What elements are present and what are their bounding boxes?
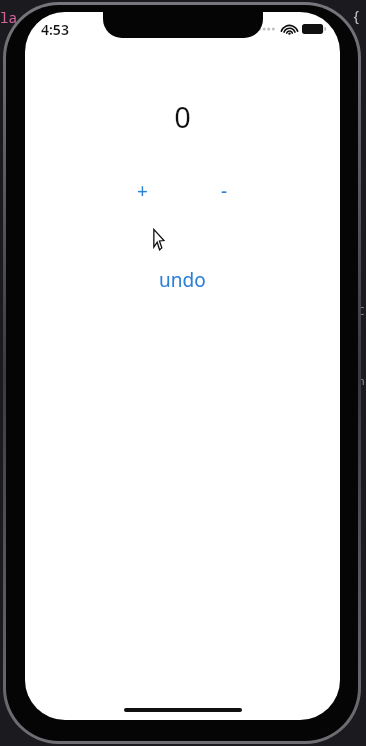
staticText: n: [358, 373, 365, 388]
button[interactable]: undo: [145, 261, 220, 299]
staticText: 0: [174, 97, 191, 136]
staticText: undo: [159, 267, 206, 293]
staticText: +: [137, 178, 148, 204]
staticText: -: [221, 178, 228, 204]
staticText: {: [352, 6, 361, 25]
staticText: la: [0, 8, 17, 27]
staticText: 4:53: [41, 20, 69, 39]
button[interactable]: Decrement: [202, 169, 246, 213]
button[interactable]: Increment: [120, 169, 164, 213]
staticText: C: [358, 303, 365, 318]
